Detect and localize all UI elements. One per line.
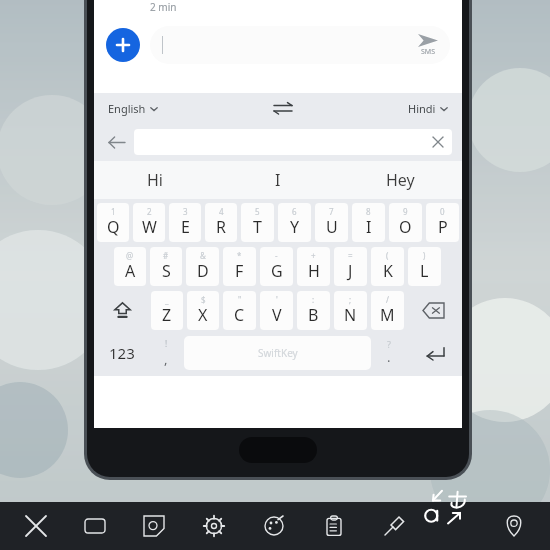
button[interactable]: 0 [426, 203, 459, 242]
staticText: ! [165, 338, 168, 349]
staticText: = [348, 250, 353, 261]
staticText: Hey [386, 169, 415, 191]
button[interactable]: Shift [95, 290, 149, 331]
button[interactable]: Enter [407, 334, 461, 372]
button[interactable]: English [108, 101, 158, 116]
button[interactable]: + [297, 247, 330, 286]
staticText: 1 [111, 206, 116, 217]
button[interactable]: Themes [244, 502, 304, 550]
staticText: _ [165, 294, 169, 305]
staticText: O [399, 216, 412, 238]
button[interactable]: 7 [315, 203, 348, 242]
staticText: P [438, 216, 448, 238]
staticText: . [387, 348, 391, 366]
staticText: G [271, 260, 283, 282]
staticText: SMS [421, 47, 436, 57]
staticText: Q [107, 216, 120, 238]
button[interactable]: & [186, 247, 219, 286]
staticText: Y [290, 216, 300, 238]
staticText: L [420, 260, 429, 282]
button[interactable]: Translate [424, 502, 484, 550]
button[interactable]: - [260, 247, 293, 286]
staticText: 5 [255, 206, 260, 217]
button[interactable]: Location [484, 502, 544, 550]
button[interactable]: Period [371, 334, 407, 372]
staticText: ) [423, 250, 426, 261]
button[interactable]: ( [371, 247, 404, 286]
staticText: I [366, 216, 372, 238]
button[interactable]: Hi [94, 161, 216, 199]
button[interactable]: Backspace [406, 290, 461, 331]
button[interactable]: Comma and voice [148, 334, 184, 372]
staticText: V [272, 304, 282, 326]
button[interactable]: " [223, 291, 256, 330]
button[interactable]: 6 [278, 203, 311, 242]
staticText: Z [162, 304, 172, 326]
button[interactable]: ' [260, 291, 293, 330]
staticText: ; [349, 294, 352, 305]
staticText: : [312, 294, 315, 305]
button[interactable]: SMS [150, 26, 450, 64]
button[interactable]: # [150, 247, 182, 286]
staticText: 0 [440, 206, 445, 217]
staticText: # [163, 250, 169, 261]
button[interactable]: Space [184, 336, 371, 370]
button[interactable]: Back [104, 129, 130, 155]
staticText: F [235, 260, 244, 282]
button[interactable]: : [297, 291, 330, 330]
button[interactable]: 3 [169, 203, 201, 242]
staticText: N [344, 304, 357, 326]
staticText: + [311, 250, 316, 261]
staticText: M [380, 304, 395, 326]
button[interactable]: 1 [97, 203, 129, 242]
button[interactable] [134, 129, 452, 155]
button[interactable]: Hey [339, 161, 462, 199]
button[interactable]: 2 [133, 203, 165, 242]
button[interactable]: = [334, 247, 367, 286]
staticText: 7 [329, 206, 334, 217]
staticText: I [275, 169, 281, 191]
button[interactable]: GIF [65, 502, 124, 550]
button[interactable]: 4 [205, 203, 237, 242]
staticText: T [253, 216, 262, 238]
staticText: Hi [147, 169, 163, 191]
button[interactable]: I [216, 161, 339, 199]
staticText: @ [126, 250, 134, 261]
staticText: S [162, 260, 171, 282]
button[interactable]: @ [114, 247, 146, 286]
staticText: 9 [403, 206, 408, 217]
staticText: - [275, 250, 278, 261]
button[interactable]: _ [151, 291, 183, 330]
button[interactable]: 9 [389, 203, 422, 242]
button[interactable]: Attach [106, 28, 140, 62]
staticText: C [234, 304, 245, 326]
button[interactable]: Stickers [124, 502, 184, 550]
staticText: H [308, 260, 320, 282]
button[interactable]: 8 [352, 203, 385, 242]
staticText: 2 [147, 206, 152, 217]
button[interactable]: 5 [241, 203, 274, 242]
staticText: English [108, 101, 146, 116]
staticText: ( [386, 250, 389, 261]
staticText: , [164, 350, 168, 368]
staticText: E [181, 216, 190, 238]
button[interactable]: $ [187, 291, 219, 330]
button[interactable]: Home [239, 437, 317, 463]
button[interactable]: Swap languages [271, 96, 295, 120]
button[interactable]: * [223, 247, 256, 286]
button[interactable]: Pin [364, 502, 424, 550]
staticText: B [308, 304, 319, 326]
staticText: SwiftKey [258, 346, 298, 360]
staticText: A [125, 260, 136, 282]
button[interactable]: Clipboard [304, 502, 364, 550]
button[interactable]: Close [6, 502, 65, 550]
button[interactable]: Translate [418, 486, 478, 534]
button[interactable]: / [371, 291, 404, 330]
button[interactable]: ) [408, 247, 441, 286]
button[interactable]: Settings [184, 502, 244, 550]
staticText: * [237, 250, 242, 261]
button[interactable]: Hindi [408, 101, 448, 116]
staticText: D [197, 260, 209, 282]
button[interactable]: 123 [95, 334, 148, 372]
button[interactable]: ; [334, 291, 367, 330]
